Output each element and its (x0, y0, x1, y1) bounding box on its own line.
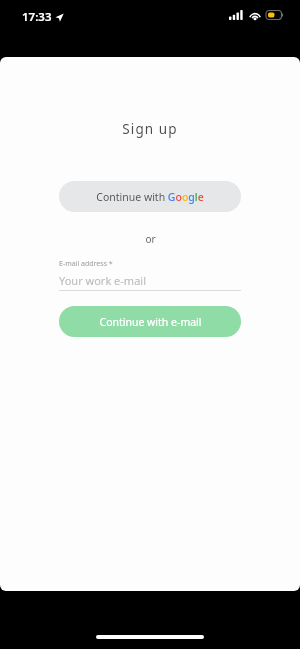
staticText: Your work e-mail (59, 273, 146, 287)
staticText: 17:33 (22, 9, 52, 25)
staticText: or (145, 232, 156, 246)
staticText: Sign up (122, 120, 178, 138)
button[interactable]: Continue with e-mail (59, 306, 241, 337)
staticText: E-mail address * (59, 259, 113, 269)
button[interactable]: Continue with Google (59, 181, 241, 212)
button[interactable]: Your work e-mail (59, 273, 241, 287)
staticText: Continue with e-mail (99, 315, 202, 329)
other: Home indicator (96, 635, 204, 639)
staticText: Continue with Google (96, 190, 204, 204)
